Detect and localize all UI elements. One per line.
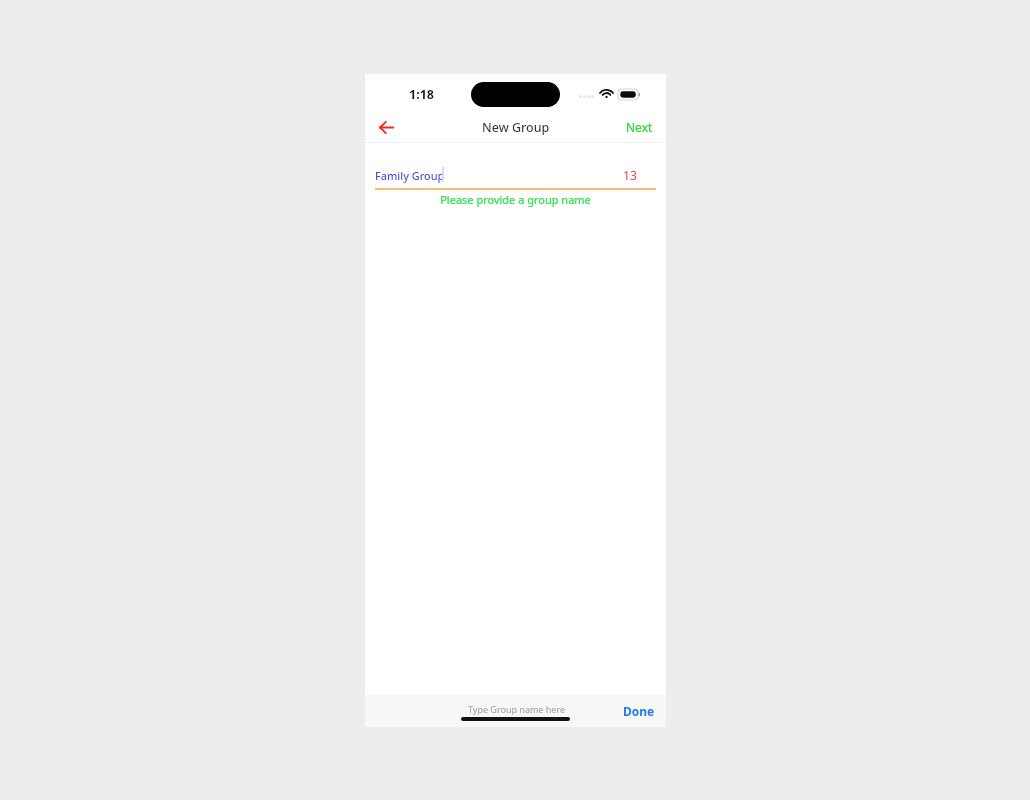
staticText: Next — [626, 119, 653, 135]
button[interactable]: Next — [613, 113, 666, 141]
button[interactable] — [365, 160, 666, 190]
staticText: New Group — [482, 119, 550, 136]
staticText: Please provide a group name — [365, 192, 666, 207]
staticText: 13 — [623, 167, 637, 184]
other: Battery — [618, 89, 640, 100]
staticText: Done — [623, 703, 655, 719]
button[interactable]: Done — [610, 697, 666, 725]
staticText: 1:18 — [409, 86, 434, 103]
button[interactable]: Type Group name here — [455, 695, 577, 727]
staticText: Family Group — [375, 168, 445, 183]
staticText: Type Group name here — [468, 703, 566, 715]
button[interactable]: Back — [370, 112, 402, 142]
other: Wi-Fi — [600, 88, 613, 98]
